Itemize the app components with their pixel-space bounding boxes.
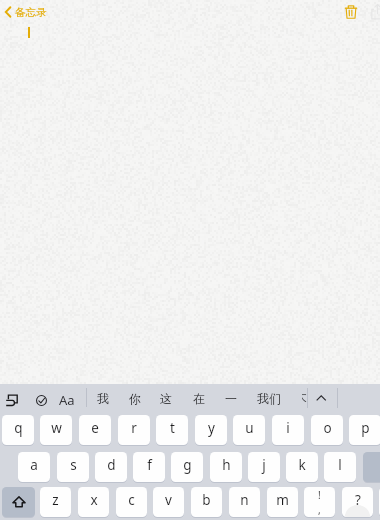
staticText: , <box>318 503 321 517</box>
button[interactable]: v <box>153 487 184 517</box>
staticText: g <box>183 456 192 474</box>
button[interactable]: k <box>286 452 318 482</box>
staticText: z <box>52 491 59 509</box>
button[interactable]: Newline <box>5 394 19 408</box>
staticText: b <box>202 491 211 509</box>
button[interactable]: 在 <box>193 391 205 406</box>
staticText: 我 <box>97 391 109 406</box>
staticText: l <box>338 456 342 474</box>
staticText: 你 <box>129 391 141 406</box>
button[interactable]: 你 <box>129 391 141 406</box>
staticText: t <box>170 419 175 437</box>
staticText: p <box>361 419 370 437</box>
button[interactable]: Shift <box>2 487 35 517</box>
button[interactable]: i <box>272 415 304 445</box>
button[interactable]: ? <box>342 487 373 517</box>
staticText: c <box>128 491 135 509</box>
staticText: m <box>276 491 289 509</box>
button[interactable]: t <box>156 415 188 445</box>
staticText: u <box>245 419 254 437</box>
button[interactable]: w <box>40 415 72 445</box>
button[interactable]: z <box>40 487 71 517</box>
button[interactable]: x <box>78 487 109 517</box>
staticText: Aa <box>59 391 75 409</box>
button[interactable]: o <box>311 415 343 445</box>
button[interactable]: Share <box>370 3 380 20</box>
staticText: s <box>70 456 77 474</box>
staticText: f <box>147 456 152 474</box>
button[interactable]: l <box>324 452 356 482</box>
staticText: n <box>240 491 249 509</box>
staticText: h <box>222 456 231 474</box>
button[interactable]: y <box>195 415 227 445</box>
staticText: 这 <box>160 391 172 406</box>
button[interactable]: ! <box>304 487 335 517</box>
button[interactable]: e <box>79 415 111 445</box>
button[interactable]: p <box>349 415 380 445</box>
staticText: k <box>298 456 306 474</box>
button[interactable]: 备忘录 <box>4 5 47 19</box>
button[interactable]: g <box>171 452 203 482</box>
button[interactable]: Delete note <box>344 3 358 20</box>
button[interactable]: j <box>248 452 280 482</box>
button[interactable]: Expand keyboard <box>313 390 329 406</box>
button[interactable]: Text style <box>59 391 75 409</box>
staticText: w <box>51 419 62 437</box>
staticText: j <box>262 456 266 474</box>
button[interactable]: More symbols <box>379 487 380 517</box>
staticText: r <box>131 419 137 437</box>
staticText: y <box>208 419 215 437</box>
button[interactable]: Confirm <box>36 395 47 406</box>
staticText: q <box>14 419 23 437</box>
button[interactable]: h <box>210 452 242 482</box>
staticText: 一 <box>225 391 237 406</box>
staticText: e <box>91 419 99 437</box>
button[interactable]: d <box>95 452 127 482</box>
button[interactable]: q <box>2 415 34 445</box>
staticText: ! <box>318 488 321 502</box>
staticText: 备忘录 <box>15 6 47 19</box>
staticText: ? <box>355 491 361 509</box>
staticText: v <box>165 491 172 509</box>
button[interactable]: s <box>57 452 89 482</box>
button[interactable]: 我们 <box>257 391 281 406</box>
staticText: 在 <box>193 391 205 406</box>
staticText: a <box>30 456 38 474</box>
button[interactable]: 这 <box>160 391 172 406</box>
button[interactable]: b <box>191 487 222 517</box>
button[interactable]: c <box>116 487 147 517</box>
staticText: x <box>90 491 98 509</box>
staticText: i <box>286 419 290 437</box>
button[interactable]: n <box>229 487 260 517</box>
button[interactable]: 我 <box>97 391 109 406</box>
staticText: o <box>323 419 332 437</box>
button[interactable]: f <box>133 452 165 482</box>
staticText: 我们 <box>257 391 281 406</box>
button[interactable]: r <box>118 415 150 445</box>
button[interactable]: m <box>267 487 298 517</box>
button[interactable]: a <box>18 452 50 482</box>
button[interactable]: 一 <box>225 391 237 406</box>
button[interactable]: u <box>233 415 265 445</box>
staticText: d <box>107 456 116 474</box>
